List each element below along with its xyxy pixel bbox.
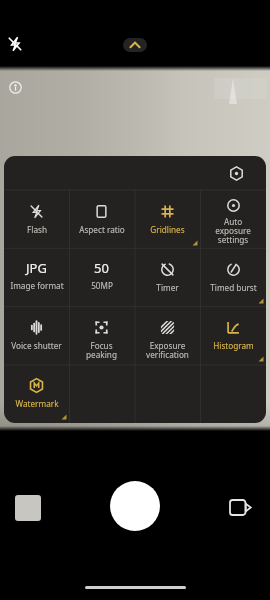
staticText: Histogram — [213, 340, 254, 351]
button[interactable]: Exposure verification — [134, 306, 200, 364]
button[interactable]: Flash — [4, 190, 69, 248]
staticText: Aspect ratio — [79, 224, 125, 235]
button[interactable]: Gridlines — [134, 190, 200, 248]
button[interactable]: Focus peaking — [69, 306, 134, 364]
button[interactable]: Watermark — [4, 364, 69, 422]
button[interactable]: Auto exposure settings — [200, 190, 266, 248]
staticText: Flash — [27, 224, 47, 235]
staticText: Watermark — [15, 398, 59, 409]
button[interactable]: Timer — [134, 248, 200, 306]
button[interactable]: Expand camera controls — [123, 38, 147, 52]
button[interactable]: Shutter — [110, 481, 160, 531]
button[interactable]: Timed burst — [200, 248, 266, 306]
staticText: Focus peaking — [86, 340, 117, 361]
staticText: 50 — [94, 259, 109, 277]
staticText: Timed burst — [210, 282, 257, 293]
staticText: Image format — [10, 280, 64, 291]
button[interactable]: Gallery — [15, 495, 41, 521]
staticText: Exposure verification — [146, 340, 189, 361]
staticText: Auto exposure settings — [215, 216, 251, 246]
button[interactable]: JPG — [4, 248, 69, 306]
button[interactable]: Switch to video — [225, 493, 255, 522]
staticText: Voice shutter — [11, 340, 62, 351]
button[interactable]: Aspect ratio — [69, 190, 134, 248]
staticText: 50MP — [91, 280, 113, 291]
button[interactable]: Info — [9, 81, 22, 94]
staticText: Timer — [156, 282, 179, 293]
staticText: Gridlines — [150, 224, 185, 235]
button[interactable]: Settings — [229, 166, 244, 181]
button[interactable]: Histogram — [200, 306, 266, 364]
button[interactable]: Flash off — [7, 36, 23, 52]
button[interactable]: 50 — [69, 248, 134, 306]
staticText: JPG — [26, 259, 47, 277]
button[interactable]: Voice shutter — [4, 306, 69, 364]
